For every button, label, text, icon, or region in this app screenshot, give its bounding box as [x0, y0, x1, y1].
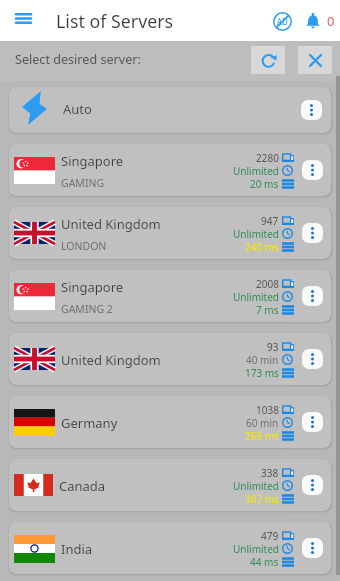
- button[interactable]: More options: [302, 412, 323, 432]
- button[interactable]: Canada: [9, 459, 331, 511]
- button[interactable]: More options: [302, 160, 323, 180]
- staticText: List of Servers: [56, 9, 174, 33]
- staticText: India: [61, 540, 93, 558]
- button[interactable]: Menu: [0, 0, 46, 41]
- button[interactable]: Germany: [9, 396, 331, 448]
- button[interactable]: More options: [301, 100, 322, 120]
- staticText: 0: [327, 12, 335, 30]
- staticText: Select desired server:: [15, 51, 141, 68]
- staticText: 240 ms: [245, 240, 279, 253]
- button[interactable]: No ads: [265, 4, 299, 38]
- staticText: United Kingdom: [61, 351, 161, 369]
- staticText: Unlimited: [233, 290, 279, 303]
- button[interactable]: More options: [302, 286, 323, 306]
- staticText: AD: [277, 16, 288, 27]
- staticText: Unlimited: [233, 542, 279, 555]
- staticText: Singapore: [61, 278, 124, 296]
- staticText: 40 min: [246, 353, 279, 366]
- staticText: Unlimited: [233, 164, 279, 177]
- button[interactable]: Auto: [9, 87, 331, 133]
- button[interactable]: Close: [298, 46, 332, 74]
- staticText: LONDON: [61, 239, 107, 253]
- button[interactable]: More options: [302, 538, 323, 558]
- staticText: 60 min: [246, 416, 279, 429]
- staticText: 269 ms: [245, 429, 279, 442]
- button[interactable]: More options: [302, 223, 323, 243]
- staticText: 479: [261, 529, 279, 542]
- staticText: 338: [261, 466, 279, 479]
- button[interactable]: India: [9, 522, 331, 574]
- staticText: 7 ms: [256, 303, 279, 316]
- staticText: 947: [261, 214, 279, 227]
- button[interactable]: United Kingdom: [9, 333, 331, 385]
- staticText: 307 ms: [245, 492, 279, 505]
- staticText: Germany: [61, 414, 118, 432]
- staticText: Auto: [63, 100, 92, 118]
- staticText: GAMING 2: [61, 302, 113, 316]
- staticText: Singapore: [61, 152, 124, 170]
- staticText: United Kingdom: [61, 215, 161, 233]
- staticText: 2008: [256, 277, 279, 290]
- button[interactable]: More options: [302, 349, 323, 369]
- button[interactable]: More options: [302, 475, 323, 495]
- staticText: Canada: [59, 477, 106, 495]
- staticText: 20 ms: [250, 177, 279, 190]
- button[interactable]: Singapore: [9, 270, 331, 322]
- staticText: 173 ms: [245, 366, 279, 379]
- staticText: Unlimited: [233, 227, 279, 240]
- staticText: 2280: [256, 151, 279, 164]
- staticText: 44 ms: [250, 555, 279, 568]
- button[interactable]: Refresh: [251, 46, 285, 74]
- button[interactable]: Singapore: [9, 144, 331, 196]
- staticText: 1038: [256, 403, 279, 416]
- staticText: 93: [267, 340, 279, 353]
- button[interactable]: United Kingdom: [9, 207, 331, 259]
- staticText: GAMING: [61, 176, 105, 190]
- staticText: Unlimited: [233, 479, 279, 492]
- button[interactable]: Notifications: [300, 6, 326, 36]
